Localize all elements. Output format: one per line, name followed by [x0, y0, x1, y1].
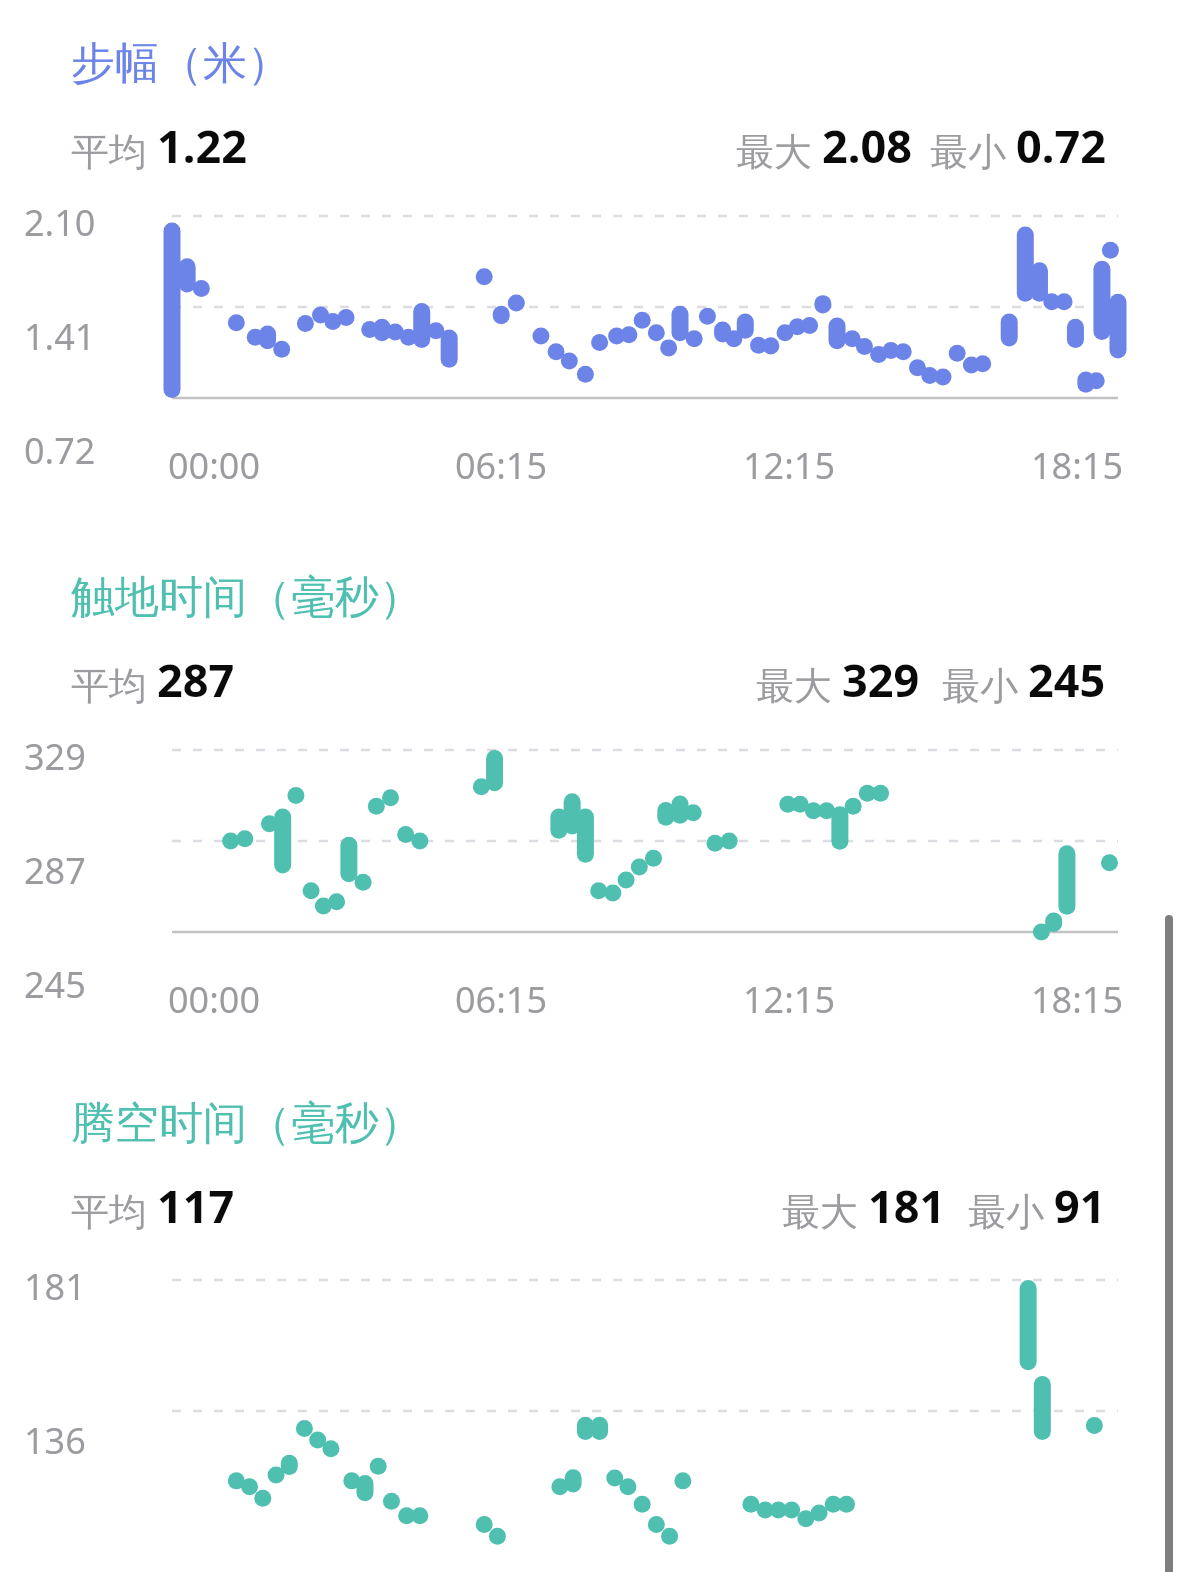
staticText: 触地时间（毫秒） [71, 570, 423, 625]
staticText: 腾空时间（毫秒） [71, 1096, 423, 1151]
staticText: 181 [868, 1175, 946, 1236]
staticText: 最小 [968, 1184, 1054, 1236]
staticText: 最小 [942, 658, 1028, 710]
staticText: 00:00 [168, 441, 261, 490]
button[interactable]: 平均 [0, 115, 1179, 176]
button[interactable]: 触地时间（毫秒） [0, 570, 1179, 625]
staticText: 最大 [736, 124, 822, 176]
button[interactable]: 平均 [0, 649, 1179, 710]
staticText: 287 [157, 649, 235, 710]
staticText: 最大 [756, 658, 842, 710]
staticText: 06:15 [455, 441, 548, 490]
staticText: 0.72 [24, 426, 96, 475]
staticText: 平均 [71, 1184, 157, 1236]
staticText: 平均 [71, 658, 157, 710]
staticText: 136 [24, 1416, 86, 1465]
staticText: 12:15 [743, 975, 836, 1024]
button[interactable]: 腾空时间（毫秒） [0, 1096, 1179, 1151]
staticText: 最大 [782, 1184, 868, 1236]
button[interactable]: 平均 [0, 1175, 1179, 1236]
staticText: 245 [1028, 649, 1106, 710]
staticText: 18:15 [1031, 441, 1124, 490]
button[interactable]: 步幅（米） [0, 36, 1179, 91]
staticText: 181 [24, 1262, 86, 1311]
staticText: 步幅（米） [71, 36, 291, 91]
staticText: 06:15 [455, 975, 548, 1024]
staticText: 18:15 [1031, 975, 1124, 1024]
staticText: 329 [842, 649, 920, 710]
staticText: 287 [24, 846, 86, 895]
staticText: 最小 [930, 124, 1016, 176]
staticText: 2.10 [24, 198, 96, 247]
staticText: 平均 [71, 124, 157, 176]
staticText: 2.08 [822, 115, 912, 176]
staticText: 91 [1054, 1175, 1106, 1236]
staticText: 117 [157, 1175, 235, 1236]
staticText: 1.22 [157, 115, 247, 176]
staticText: 245 [24, 960, 86, 1009]
staticText: 0.72 [1016, 115, 1106, 176]
staticText: 00:00 [168, 975, 261, 1024]
staticText: 1.41 [24, 312, 96, 361]
staticText: 12:15 [743, 441, 836, 490]
staticText: 329 [24, 732, 86, 781]
